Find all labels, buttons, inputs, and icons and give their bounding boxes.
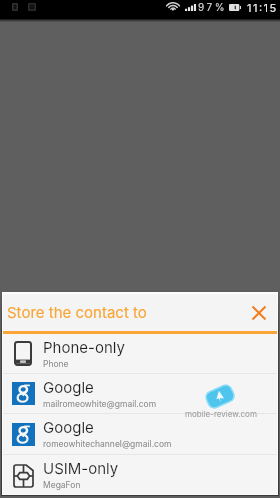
staticText: MegaFon bbox=[43, 480, 81, 490]
button[interactable]: Google bbox=[3, 414, 277, 454]
button[interactable]: Google bbox=[3, 374, 277, 413]
button[interactable]: Close bbox=[241, 294, 277, 331]
button[interactable]: Phone-only bbox=[3, 334, 277, 373]
staticText: 11:15 bbox=[247, 1, 278, 14]
staticText: Phone-only bbox=[43, 338, 125, 356]
staticText: Google bbox=[43, 378, 94, 396]
staticText: 97% bbox=[198, 1, 227, 13]
staticText: USIM-only bbox=[43, 459, 119, 477]
staticText: mailromeowhite@gmail.com bbox=[43, 399, 157, 409]
staticText: Google bbox=[43, 418, 94, 436]
staticText: Phone bbox=[43, 359, 69, 369]
staticText: mobile-review.com bbox=[185, 409, 257, 419]
staticText: Store the contact to bbox=[7, 303, 147, 321]
button[interactable]: USIM-only bbox=[3, 455, 277, 494]
staticText: romeowhitechannel@gmail.com bbox=[43, 439, 172, 449]
